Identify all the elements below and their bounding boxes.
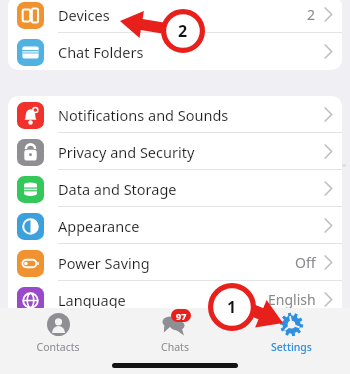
staticText: 2: [307, 5, 316, 24]
staticText: Settings: [271, 340, 312, 354]
staticText: Contacts: [36, 340, 80, 354]
staticText: 97: [176, 310, 187, 322]
button[interactable]: Language: [8, 281, 342, 318]
staticText: Notifications and Sounds: [58, 105, 229, 125]
button[interactable]: Contacts: [0, 308, 116, 360]
button[interactable]: Chats: [116, 308, 233, 360]
staticText: @thegeekpage.com: [273, 130, 350, 180]
staticText: Data and Storage: [58, 179, 177, 199]
staticText: English: [268, 290, 316, 309]
button[interactable]: Notifications and Sounds: [8, 96, 342, 133]
other: Chats: [161, 312, 189, 337]
staticText: Appearance: [58, 216, 140, 236]
staticText: 1: [227, 296, 237, 318]
button[interactable]: Power Saving: [8, 244, 342, 281]
button[interactable]: Appearance: [8, 207, 342, 244]
button[interactable]: Data and Storage: [8, 170, 342, 207]
button[interactable]: Chat Folders: [8, 33, 342, 70]
button[interactable]: Devices: [8, 0, 342, 33]
button[interactable]: Settings: [233, 308, 350, 360]
staticText: Devices: [58, 5, 110, 25]
staticText: Language: [58, 290, 126, 310]
staticText: Chat Folders: [58, 42, 144, 62]
staticText: Power Saving: [58, 253, 150, 273]
staticText: Off: [295, 253, 316, 272]
button[interactable]: Privacy and Security: [8, 133, 342, 170]
staticText: Chats: [161, 340, 189, 354]
other: Contacts: [46, 312, 71, 337]
staticText: 2: [178, 20, 188, 42]
staticText: Privacy and Security: [58, 142, 195, 162]
other: Settings: [279, 312, 304, 337]
